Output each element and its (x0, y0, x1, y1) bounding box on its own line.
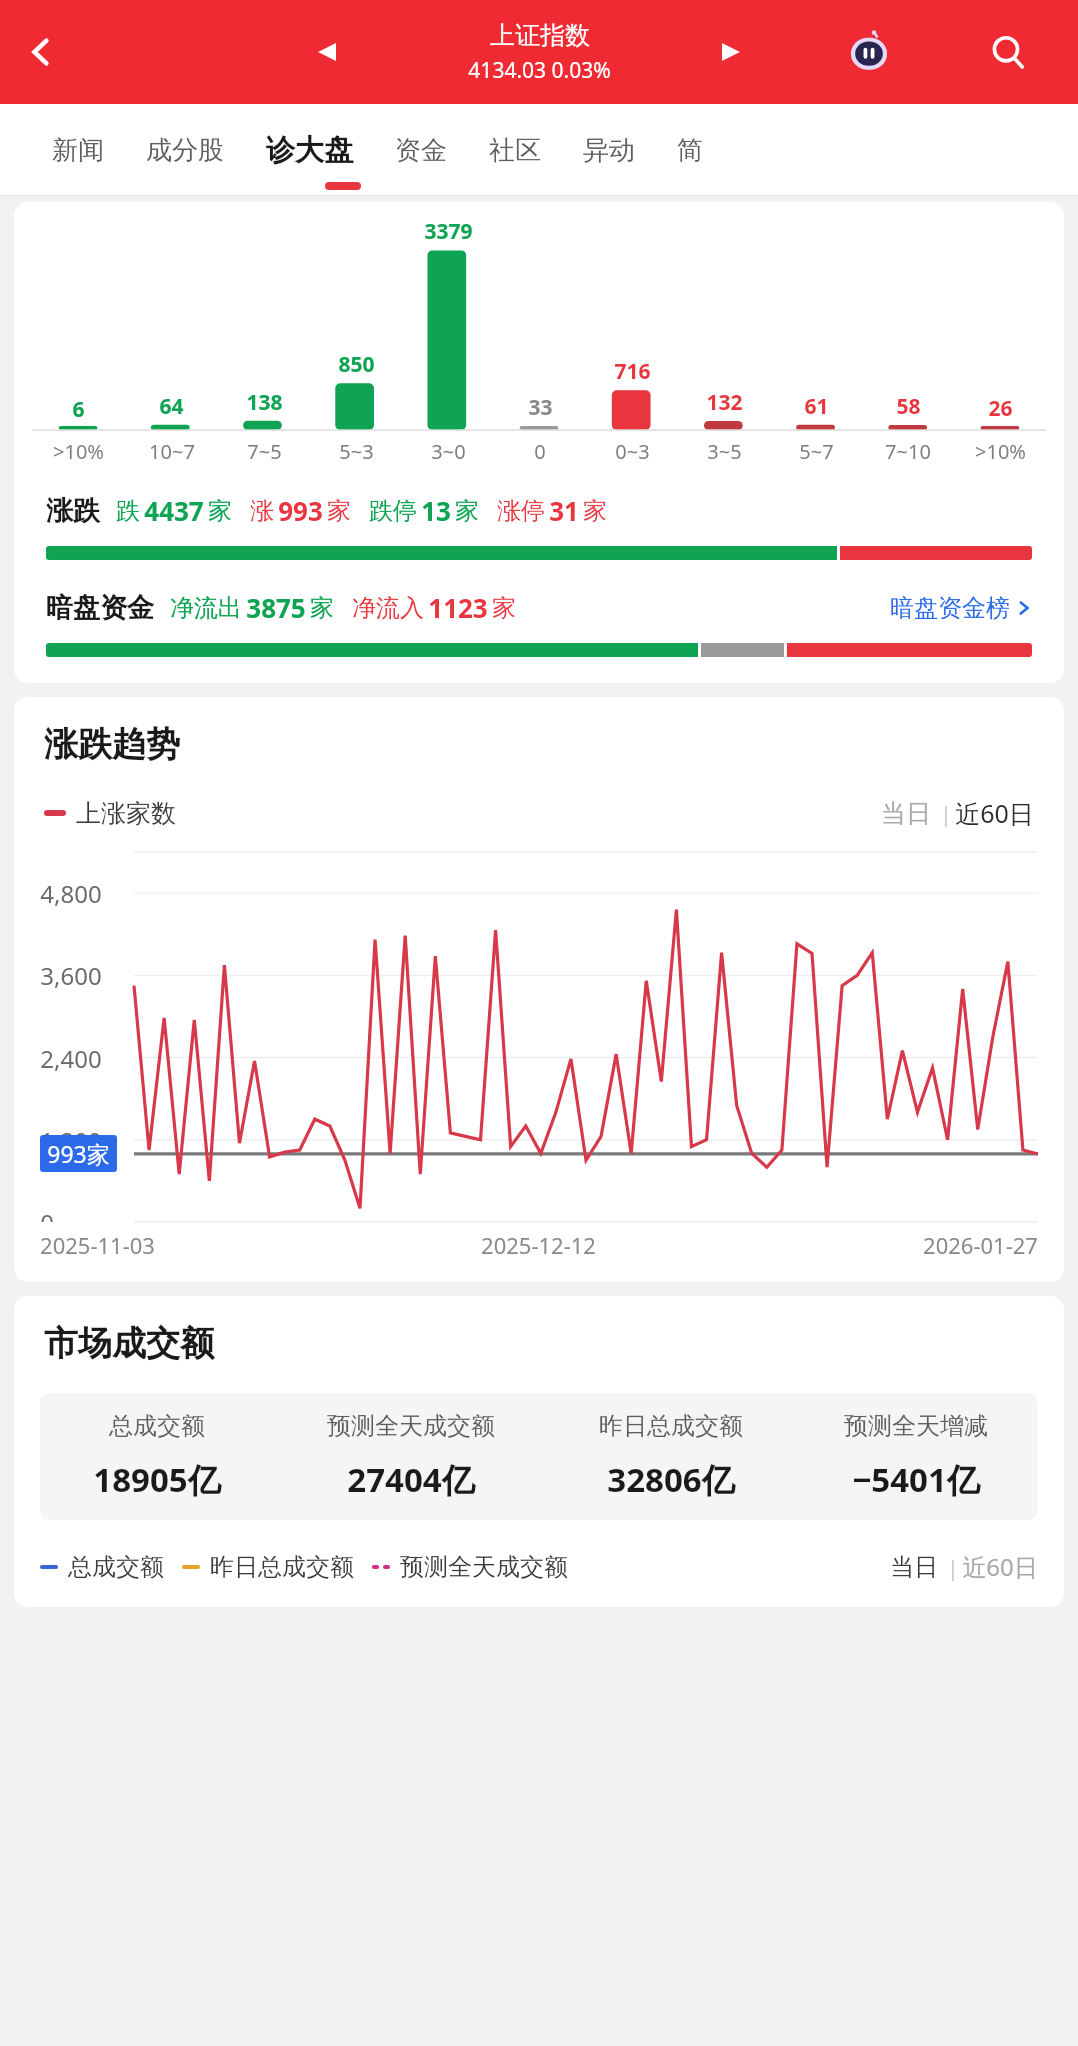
staticText: 850 (338, 350, 375, 379)
staticText: 27404亿 (347, 1457, 475, 1502)
staticText: 暗盘资金 (46, 591, 154, 625)
staticText: 4,800 (40, 877, 102, 910)
staticText: 2025-12-12 (481, 1230, 596, 1260)
button[interactable]: 暗盘资金榜 (890, 593, 1032, 623)
staticText: 昨日总成交额 (210, 1552, 354, 1582)
staticText: 近60日 (955, 796, 1034, 830)
staticText: 预测全天成交额 (400, 1552, 568, 1582)
staticText: 4134.03 0.03% (468, 56, 611, 85)
button[interactable]: 近60日 (962, 1550, 1038, 1583)
staticText: 涨跌 (46, 494, 100, 528)
staticText: 3,600 (40, 959, 102, 992)
button[interactable]: 当日 (881, 798, 931, 829)
staticText: 涨跌趋势 (44, 723, 180, 766)
staticText: 涨停 (497, 496, 545, 526)
staticText: 简 (677, 134, 703, 167)
staticText: 暗盘资金榜 (890, 593, 1010, 623)
staticText: 7~10 (885, 438, 931, 465)
button[interactable]: Search (978, 22, 1038, 82)
staticText: −5401亿 (852, 1457, 980, 1502)
staticText: 家 (583, 496, 607, 526)
staticText: 上涨家数 (76, 798, 176, 829)
button[interactable]: Back (10, 21, 72, 83)
staticText: 1123 (428, 590, 488, 625)
staticText: 132 (706, 388, 743, 417)
button[interactable]: 资金 (377, 126, 465, 175)
staticText: 33 (528, 393, 553, 422)
staticText: 2026-01-27 (923, 1230, 1038, 1260)
staticText: >10% (53, 438, 104, 465)
staticText: 成分股 (146, 134, 224, 167)
staticText: 涨 (250, 496, 274, 526)
staticText: 61 (804, 392, 829, 421)
staticText: 716 (614, 357, 651, 386)
staticText: 跌停 (369, 496, 417, 526)
staticText: >10% (975, 438, 1026, 465)
button[interactable]: 社区 (471, 126, 559, 175)
staticText: 家 (310, 593, 334, 623)
staticText: 7~5 (247, 438, 282, 465)
staticText: 2,400 (40, 1042, 102, 1075)
staticText: | (931, 798, 955, 828)
staticText: 13 (421, 493, 451, 528)
staticText: 26 (988, 394, 1013, 423)
staticText: 2025-11-03 (40, 1230, 155, 1260)
button[interactable]: 成分股 (128, 126, 242, 175)
staticText: 64 (159, 392, 184, 421)
staticText: 3875 (246, 590, 306, 625)
staticText: 家 (327, 496, 351, 526)
staticText: 家 (455, 496, 479, 526)
staticText: 3~0 (431, 438, 466, 465)
staticText: 跌 (116, 496, 140, 526)
staticText: 1,200 (40, 1124, 102, 1157)
staticText: 3379 (424, 217, 473, 246)
staticText: 10~7 (149, 438, 195, 465)
button[interactable]: AI assistant (840, 23, 898, 81)
button[interactable]: 简 (659, 126, 721, 175)
staticText: 市场成交额 (44, 1322, 214, 1365)
staticText: 资金 (395, 134, 447, 167)
staticText: 5~7 (799, 438, 834, 465)
staticText: 上证指数 (490, 20, 590, 51)
staticText: 预测全天增减 (844, 1411, 988, 1441)
button[interactable]: Next index (704, 25, 758, 79)
staticText: 诊大盘 (266, 132, 353, 169)
staticText: 18905亿 (93, 1457, 221, 1502)
staticText: 0 (40, 1206, 54, 1222)
staticText: 社区 (489, 134, 541, 167)
staticText: 昨日总成交额 (599, 1411, 743, 1441)
staticText: 993家 (47, 1138, 110, 1169)
staticText: 0~3 (615, 438, 650, 465)
staticText: 家 (492, 593, 516, 623)
staticText: 总成交额 (109, 1411, 205, 1441)
button[interactable]: 近60日 (955, 796, 1034, 830)
staticText: 当日 (890, 1552, 938, 1582)
button[interactable]: 异动 (565, 126, 653, 175)
staticText: 异动 (583, 134, 635, 167)
staticText: | (938, 1552, 962, 1582)
staticText: 总成交额 (68, 1552, 164, 1582)
staticText: 近60日 (962, 1550, 1038, 1583)
staticText: 0 (534, 438, 546, 465)
staticText: 32806亿 (607, 1457, 735, 1502)
staticText: 138 (246, 388, 283, 417)
staticText: 新闻 (52, 134, 104, 167)
staticText: 当日 (881, 798, 931, 829)
staticText: 5~3 (339, 438, 374, 465)
button[interactable]: Previous index (300, 25, 354, 79)
staticText: 6 (72, 395, 85, 424)
staticText: 993 (278, 493, 323, 528)
staticText: 3~5 (707, 438, 742, 465)
staticText: 4437 (144, 493, 204, 528)
staticText: 预测全天成交额 (327, 1411, 495, 1441)
button[interactable]: 当日 (890, 1552, 938, 1582)
staticText: 净流入 (352, 593, 424, 623)
staticText: 净流出 (170, 593, 242, 623)
button[interactable]: 新闻 (34, 126, 122, 175)
staticText: 31 (549, 493, 579, 528)
staticText: 家 (208, 496, 232, 526)
staticText: 58 (896, 392, 921, 421)
button[interactable]: 诊大盘 (248, 124, 371, 177)
